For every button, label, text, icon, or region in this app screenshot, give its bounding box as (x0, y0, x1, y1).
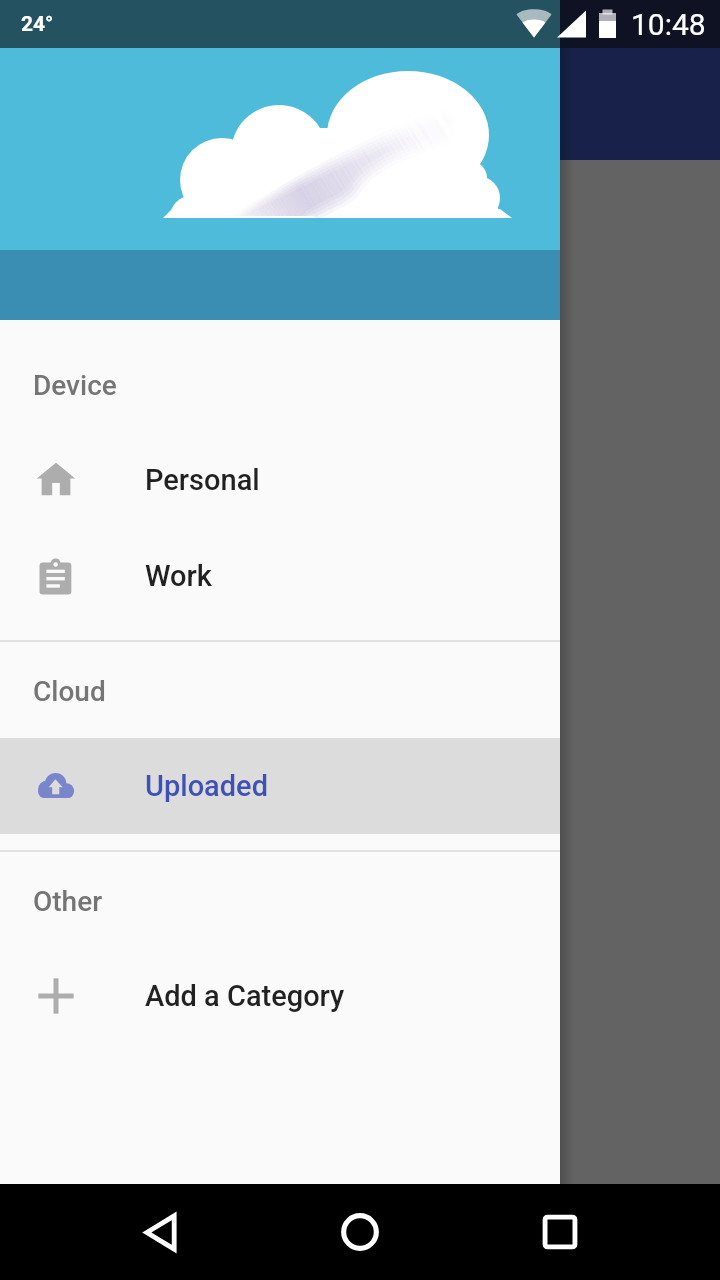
button[interactable]: Back (120, 1192, 200, 1272)
staticText: Other (33, 885, 103, 918)
staticText: Personal (145, 463, 260, 497)
staticText: Device (33, 369, 117, 402)
staticText: Uploaded (145, 769, 268, 803)
button[interactable]: Add a Category (0, 948, 560, 1044)
staticText: 10:48 (631, 7, 706, 42)
staticText: Add a Category (145, 979, 345, 1013)
button[interactable]: Uploaded (0, 738, 560, 834)
staticText: Work (145, 559, 212, 593)
staticText: Cloud (33, 675, 106, 708)
button[interactable]: Home (320, 1192, 400, 1272)
staticText: 24° (21, 12, 54, 37)
button[interactable]: Personal (0, 432, 560, 528)
button[interactable]: Work (0, 528, 560, 624)
button[interactable]: Recent apps (520, 1192, 600, 1272)
